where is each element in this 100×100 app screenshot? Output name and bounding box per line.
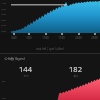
other: Heart rate graph bbox=[0, 78, 100, 100]
staticText: 182 bbox=[69, 64, 82, 74]
staticText: 心拍数 (bpm) bbox=[4, 56, 25, 61]
staticText: 5:00 bbox=[26, 36, 32, 40]
staticText: 134 bbox=[1, 96, 6, 99]
staticText: 標高 (m) | 速度 (分/km) bbox=[36, 47, 64, 51]
staticText: 144 bbox=[19, 64, 32, 74]
staticText: 4:30 bbox=[1, 12, 6, 15]
staticText: 17:00 bbox=[58, 36, 65, 40]
button[interactable]: 1:30 bbox=[0, 0, 100, 33]
staticText: 11:00 bbox=[42, 36, 49, 40]
staticText: 6:00 bbox=[1, 18, 6, 21]
staticText: 1:30 bbox=[1, 1, 6, 4]
staticText: 平均 bbox=[23, 74, 29, 77]
button[interactable]: 心拍数 (bpm) bbox=[0, 54, 100, 100]
staticText: 0:00 bbox=[11, 36, 17, 40]
staticText: 3:00 bbox=[1, 7, 6, 10]
staticText: 23:00 bbox=[75, 36, 82, 40]
staticText: 187 bbox=[1, 79, 6, 82]
staticText: 7:30 bbox=[1, 23, 6, 26]
staticText: 29:00 bbox=[91, 36, 98, 40]
staticText: 9:00 bbox=[1, 29, 6, 32]
staticText: 最大 bbox=[73, 74, 79, 77]
